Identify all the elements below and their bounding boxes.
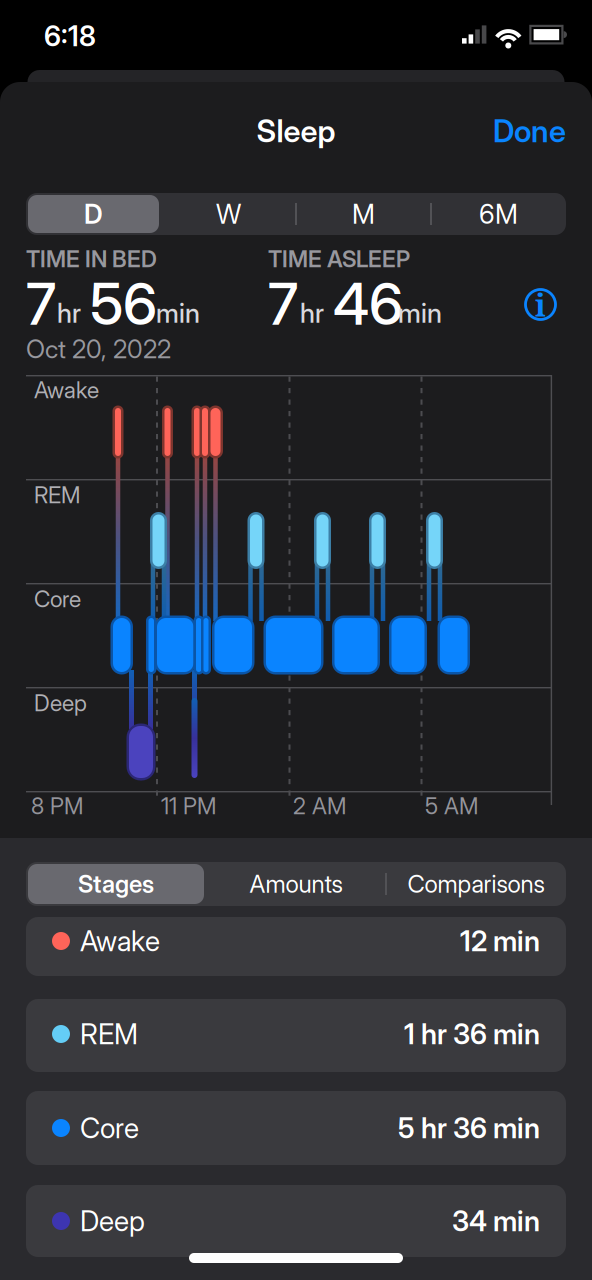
button[interactable]: Comparisons [387, 864, 565, 904]
staticText: 12 min [460, 924, 540, 957]
button[interactable]: Amounts [208, 864, 384, 904]
staticText: Deep [34, 690, 87, 716]
button[interactable]: M [298, 195, 429, 233]
staticText: 7 [268, 270, 298, 338]
staticText: 56 [90, 270, 157, 338]
staticText: REM [80, 1017, 138, 1050]
staticText: 1 hr 36 min [404, 1017, 540, 1050]
staticText: 11 PM [161, 793, 216, 819]
staticText: i [535, 284, 546, 325]
staticText: Sleep [256, 113, 335, 149]
staticText: Amounts [249, 870, 342, 898]
staticText: Awake [34, 377, 99, 403]
staticText: 2 AM [293, 793, 346, 819]
staticText: Done [493, 113, 566, 149]
staticText: 6:18 [44, 19, 96, 52]
staticText: 6M [479, 198, 518, 230]
staticText: W [216, 198, 241, 230]
button[interactable]: i [523, 287, 557, 321]
staticText: TIME IN BED [26, 246, 157, 272]
button[interactable]: Stages [28, 864, 204, 904]
button[interactable]: Done [0, 0, 592, 1280]
button[interactable]: W [163, 195, 294, 233]
staticText: Stages [78, 870, 154, 898]
staticText: Oct 20, 2022 [26, 334, 171, 364]
staticText: 5 hr 36 min [398, 1111, 540, 1144]
staticText: Awake [80, 924, 160, 957]
staticText: Core [34, 586, 81, 612]
staticText: 5 AM [425, 793, 478, 819]
staticText: 34 min [452, 1204, 540, 1237]
staticText: M [352, 198, 375, 230]
staticText: TIME ASLEEP [268, 246, 410, 272]
staticText: 46 [333, 270, 403, 338]
staticText: hr [300, 297, 324, 329]
button[interactable]: D [28, 195, 159, 233]
staticText: 7 [26, 270, 56, 338]
staticText: hr [57, 297, 81, 329]
staticText: Comparisons [407, 870, 544, 898]
button[interactable]: 6M [433, 195, 564, 233]
staticText: min [156, 297, 200, 329]
staticText: D [84, 198, 103, 230]
staticText: 8 PM [31, 793, 83, 819]
staticText: Deep [80, 1204, 145, 1237]
staticText: Core [80, 1111, 139, 1144]
staticText: min [398, 297, 442, 329]
staticText: REM [34, 482, 80, 508]
